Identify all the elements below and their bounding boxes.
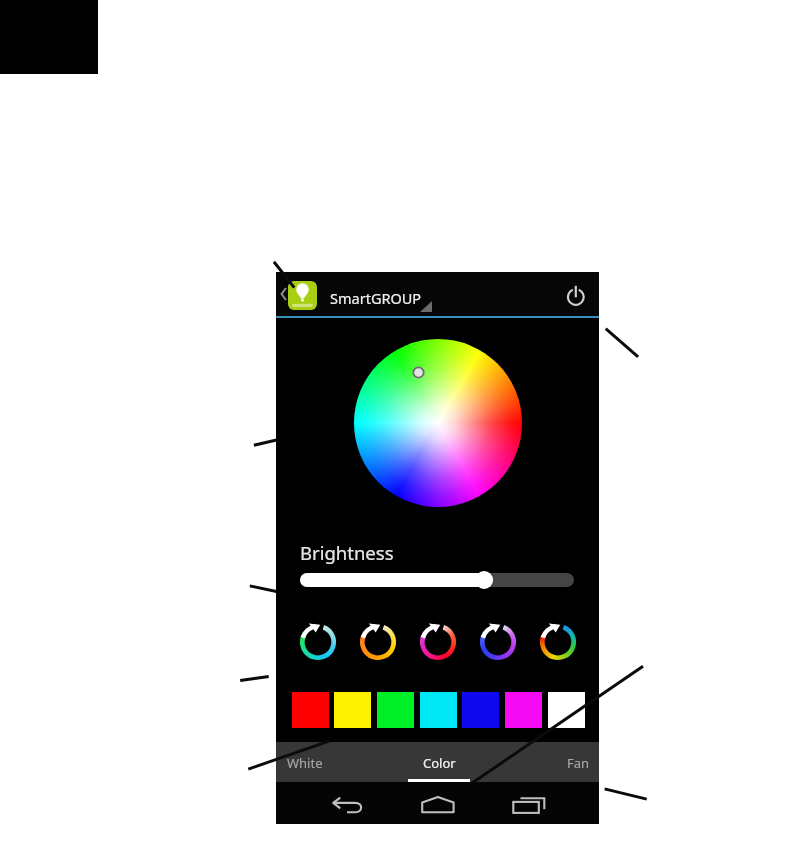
button[interactable]: Colour cycle preset 2 xyxy=(354,618,402,666)
button[interactable]: Power xyxy=(558,279,594,315)
button[interactable]: Home xyxy=(410,783,466,823)
button[interactable]: Colour cycle preset 3 xyxy=(414,618,462,666)
staticText: Color xyxy=(423,754,456,772)
button[interactable]: Fan xyxy=(493,742,599,782)
staticText: Fan xyxy=(567,754,590,772)
button[interactable]: Back xyxy=(318,783,376,823)
staticText: Brightness xyxy=(300,540,394,565)
button[interactable]: Colour wheel xyxy=(354,339,522,507)
button[interactable]: Color xyxy=(383,742,493,782)
button[interactable]: Colour cycle preset 4 xyxy=(474,618,522,666)
button[interactable]: Recent apps xyxy=(501,783,557,823)
button[interactable]: Colour cycle preset 1 xyxy=(294,618,342,666)
button[interactable]: White xyxy=(276,742,383,782)
button[interactable]: SmartGROUP app icon xyxy=(288,281,317,310)
button[interactable]: Colour swatch 7 xyxy=(548,692,585,728)
button[interactable]: Colour cycle preset 5 xyxy=(534,618,582,666)
button[interactable]: Back xyxy=(276,280,290,308)
button[interactable]: Brightness slider xyxy=(298,569,576,591)
staticText: White xyxy=(287,754,323,772)
staticText: SmartGROUP xyxy=(330,288,422,308)
